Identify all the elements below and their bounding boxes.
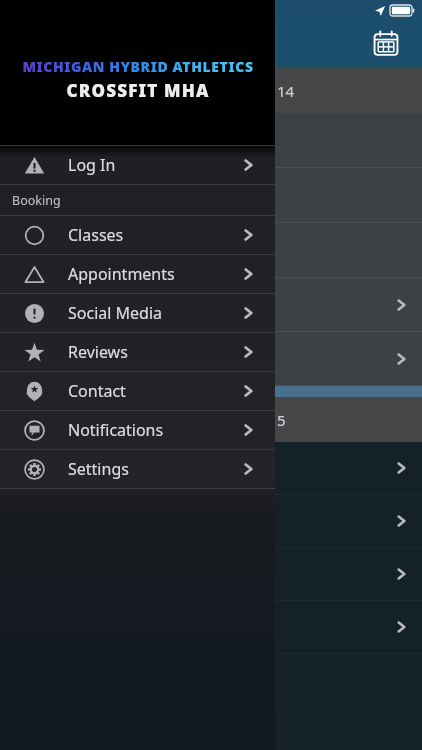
button[interactable] (0, 223, 422, 277)
staticText: Reviews (68, 341, 128, 363)
button[interactable] (0, 495, 422, 547)
button[interactable] (0, 278, 422, 331)
button[interactable]: Reviews (0, 333, 275, 371)
button[interactable]: Classes (0, 216, 275, 254)
staticText: Social Media (68, 302, 163, 324)
staticText: Classes (68, 224, 124, 246)
staticText: MICHIGAN HYBRID ATHLETICS (22, 57, 254, 76)
button[interactable]: Log In (0, 146, 275, 184)
staticText: 5 (277, 410, 286, 430)
staticText: Notifications (68, 419, 164, 441)
button[interactable]: Appointments (0, 255, 275, 293)
button[interactable]: Settings (0, 450, 275, 488)
button[interactable] (0, 548, 422, 600)
staticText: 14 (277, 81, 295, 101)
button[interactable]: Contact (0, 372, 275, 410)
button[interactable] (0, 113, 422, 167)
button[interactable]: Social Media (0, 294, 275, 332)
button[interactable] (0, 332, 422, 385)
staticText: Appointments (68, 263, 175, 285)
staticText: CROSSFIT MHA (66, 79, 210, 102)
button[interactable] (0, 601, 422, 653)
button[interactable]: Calendar (364, 22, 408, 66)
button[interactable]: Notifications (0, 411, 275, 449)
staticText: Settings (68, 458, 129, 480)
button[interactable] (0, 168, 422, 222)
staticText: Log In (68, 154, 116, 176)
staticText: Contact (68, 380, 126, 402)
staticText: Booking (12, 192, 61, 209)
button[interactable] (0, 442, 422, 494)
